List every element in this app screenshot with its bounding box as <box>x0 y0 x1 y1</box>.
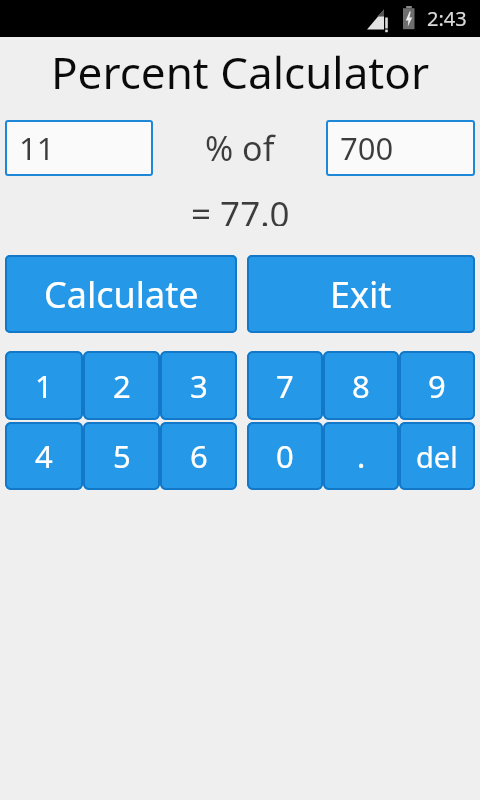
button[interactable]: Calculate <box>5 255 237 333</box>
staticText: 2:43 <box>427 5 467 32</box>
button[interactable]: 5 <box>83 422 160 490</box>
staticText: 9 <box>428 365 446 407</box>
button[interactable]: 4 <box>5 422 83 490</box>
button[interactable]: 8 <box>323 351 399 420</box>
staticText: 700 <box>340 127 394 169</box>
button[interactable]: 700 <box>326 120 475 176</box>
staticText: Percent Calculator <box>51 42 430 102</box>
button[interactable]: Exit <box>247 255 475 333</box>
staticText: . <box>357 435 366 477</box>
staticText: 3 <box>190 365 208 407</box>
staticText: % of <box>205 125 275 171</box>
staticText: 6 <box>190 435 208 477</box>
staticText: 4 <box>35 435 53 477</box>
staticText: 5 <box>113 435 131 477</box>
staticText: del <box>416 437 458 476</box>
button[interactable]: 3 <box>160 351 237 420</box>
staticText: = 77.0 <box>191 190 290 226</box>
staticText: 11 <box>19 127 55 169</box>
button[interactable]: 1 <box>5 351 83 420</box>
staticText: Calculate <box>44 270 199 319</box>
staticText: 2 <box>113 365 131 407</box>
button[interactable]: . <box>323 422 399 490</box>
staticText: 0 <box>276 435 294 477</box>
button[interactable]: 9 <box>399 351 475 420</box>
button[interactable]: 0 <box>247 422 323 490</box>
button[interactable]: 7 <box>247 351 323 420</box>
button[interactable]: del <box>399 422 475 490</box>
staticText: 7 <box>276 365 294 407</box>
staticText: 1 <box>35 365 53 407</box>
button[interactable]: 11 <box>5 120 153 176</box>
staticText: 8 <box>352 365 370 407</box>
button[interactable]: 2 <box>83 351 160 420</box>
button[interactable]: 6 <box>160 422 237 490</box>
staticText: Exit <box>330 270 392 319</box>
